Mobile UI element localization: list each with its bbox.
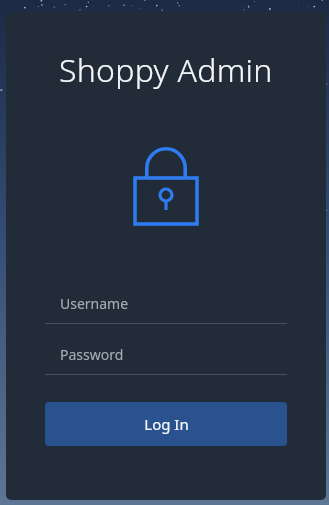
button[interactable]: Log In <box>45 402 287 446</box>
staticText: Username <box>60 294 129 313</box>
button[interactable]: Password <box>45 345 287 375</box>
staticText: Shoppy Admin <box>59 48 273 92</box>
staticText: Password <box>60 345 124 364</box>
button[interactable]: Username <box>45 294 287 324</box>
staticText: Log In <box>144 414 189 434</box>
